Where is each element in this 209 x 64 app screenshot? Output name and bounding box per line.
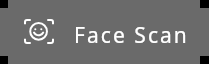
staticText: Face Scan bbox=[74, 21, 189, 50]
button[interactable]: Face Scan bbox=[0, 0, 209, 64]
other: Face Scan bbox=[24, 19, 54, 44]
